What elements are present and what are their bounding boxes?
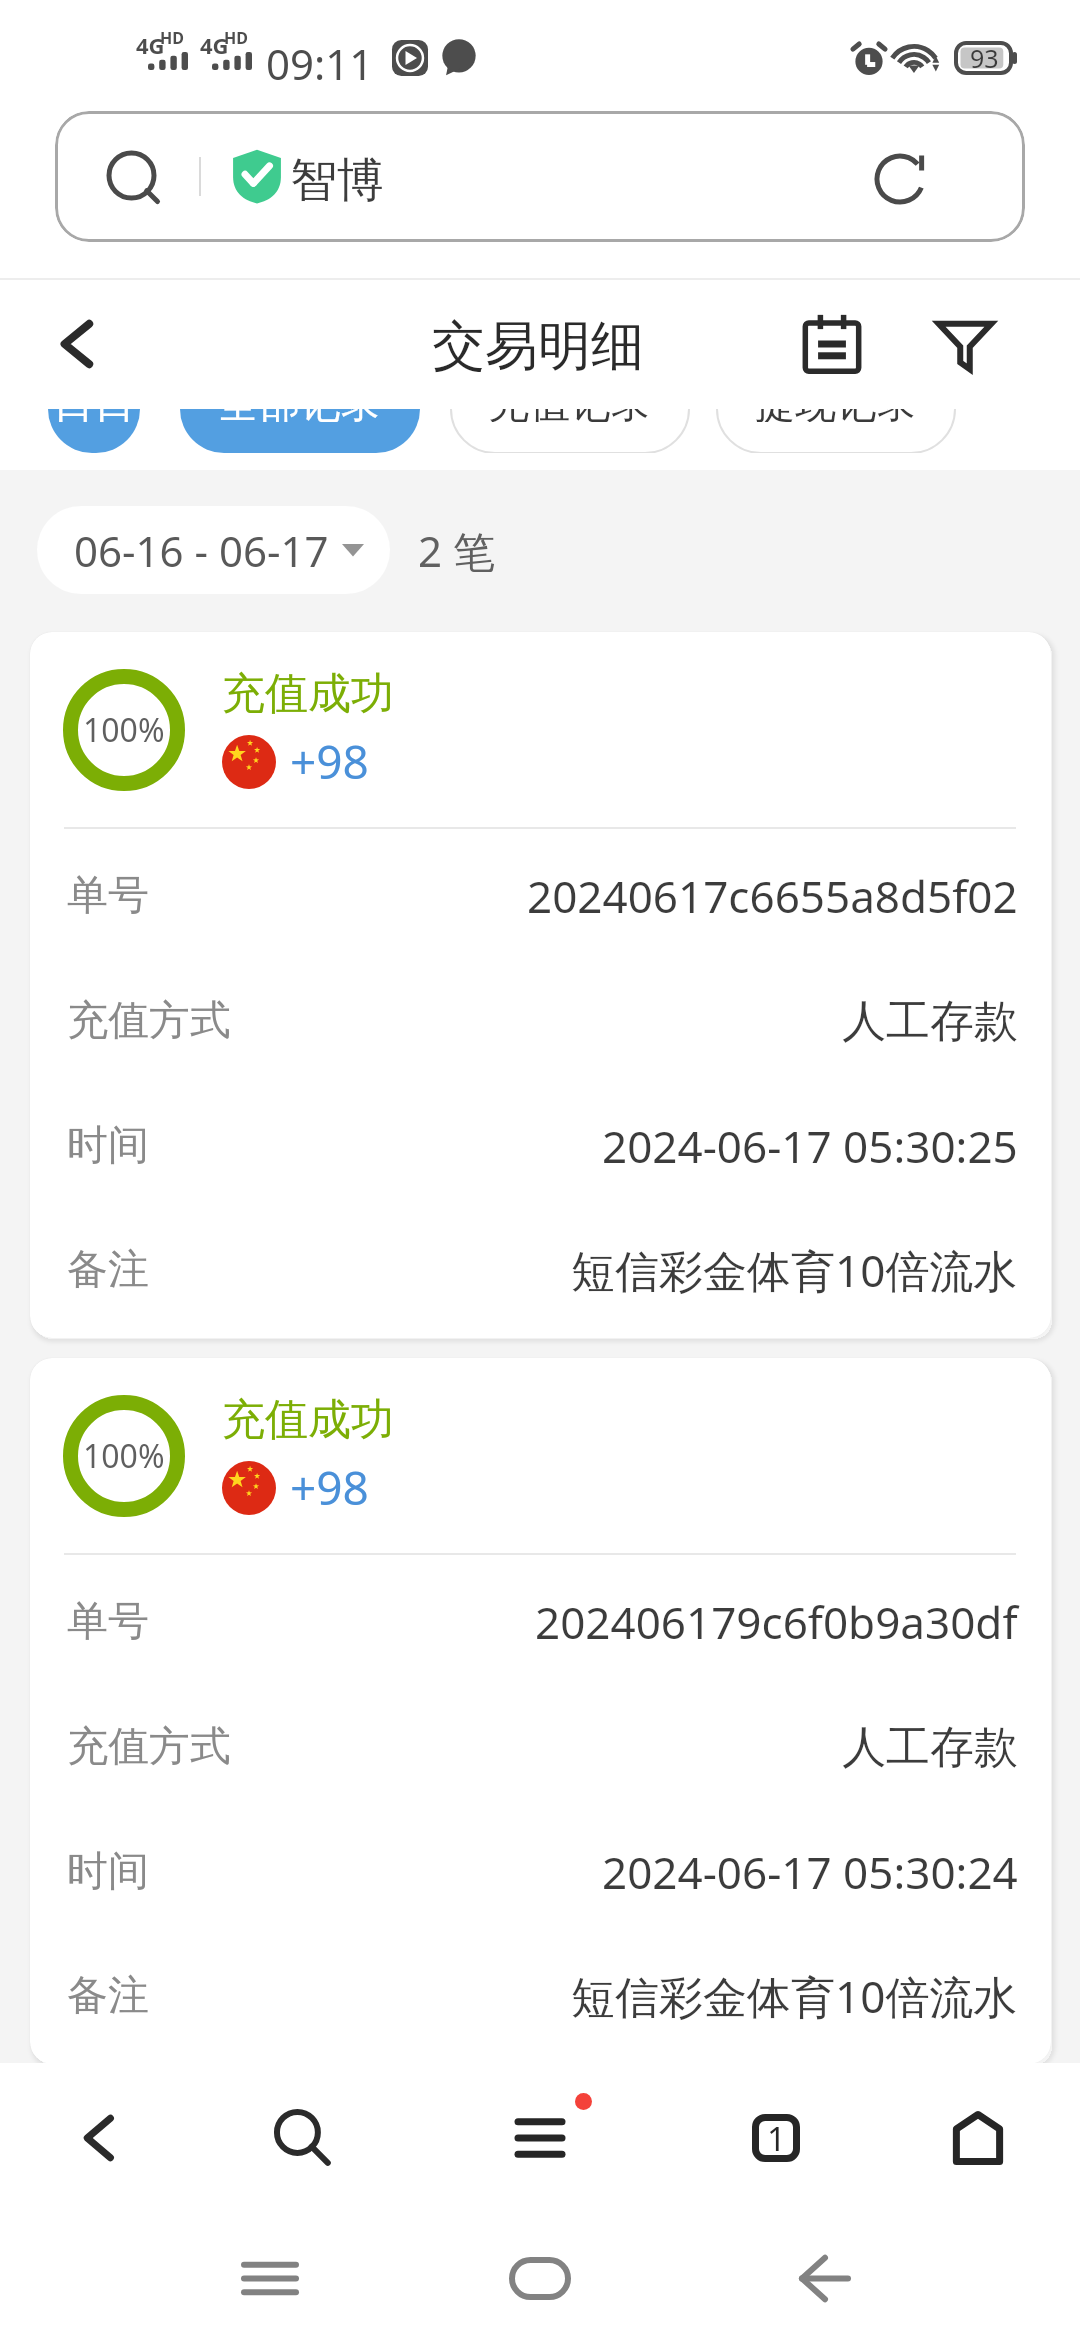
- other: Wifi: [898, 41, 940, 75]
- staticText: 短信彩金体育10倍流水: [571, 1966, 1018, 2026]
- staticText: HD: [160, 27, 184, 49]
- staticText: 时间: [67, 1846, 149, 1898]
- button[interactable]: Recents: [170, 2233, 370, 2323]
- button[interactable]: 100%: [30, 632, 1051, 1338]
- button[interactable]: Search: [55, 111, 1025, 242]
- staticText: 100%: [83, 1434, 165, 1478]
- other: Alarm: [852, 41, 886, 75]
- button[interactable]: 06-16 - 06-17: [37, 506, 390, 594]
- button[interactable]: Tabs: [686, 2063, 866, 2213]
- staticText: 提现记录: [754, 409, 918, 422]
- staticText: 2024-06-17 05:30:25: [602, 1116, 1018, 1176]
- button[interactable]: Filter: [923, 302, 1007, 386]
- button[interactable]: Home: [440, 2233, 640, 2323]
- staticText: 2 笔: [418, 522, 495, 579]
- staticText: 短信彩金体育10倍流水: [571, 1240, 1018, 1300]
- staticText: 人工存款: [842, 994, 1018, 1049]
- staticText: 09:11: [266, 35, 374, 92]
- staticText: 20240617c6655a8d5f02: [527, 866, 1018, 926]
- other: Refresh: [875, 154, 925, 204]
- staticText: 充值方式: [67, 995, 231, 1047]
- staticText: +98: [290, 1456, 369, 1519]
- staticText: 人工存款: [842, 1720, 1018, 1775]
- staticText: 充值记录: [488, 409, 652, 422]
- staticText: 充值成功: [222, 1393, 394, 1447]
- staticText: 智博: [290, 151, 384, 210]
- button[interactable]: 充值记录: [450, 409, 690, 453]
- staticText: 充值方式: [67, 1721, 231, 1773]
- staticText: 单号: [67, 1596, 149, 1648]
- button[interactable]: 100%: [30, 1358, 1051, 2064]
- button[interactable]: Search: [213, 2063, 393, 2213]
- button[interactable]: Back: [725, 2233, 925, 2323]
- button[interactable]: 提现记录: [716, 409, 956, 453]
- staticText: HD: [224, 27, 248, 49]
- staticText: 充值成功: [222, 667, 394, 721]
- staticText: 06-16 - 06-17: [74, 522, 329, 579]
- button[interactable]: Back: [32, 298, 124, 390]
- staticText: 93: [970, 41, 999, 75]
- staticText: 4G: [200, 30, 229, 60]
- button[interactable]: Menu: [450, 2063, 630, 2213]
- button[interactable]: Calendar: [786, 298, 878, 390]
- staticText: 备注: [67, 1970, 149, 2022]
- staticText: +98: [290, 730, 369, 793]
- staticText: 单号: [67, 870, 149, 922]
- staticText: 2024-06-17 05:30:24: [602, 1842, 1018, 1902]
- staticText: 100%: [83, 708, 165, 752]
- other: Search: [108, 152, 158, 202]
- staticText: 交易明细: [432, 313, 644, 380]
- staticText: 日日: [53, 409, 135, 422]
- button[interactable]: 日日: [48, 409, 140, 453]
- button[interactable]: 全部记录: [180, 409, 420, 453]
- staticText: 时间: [67, 1120, 149, 1172]
- staticText: 全部记录: [218, 409, 382, 422]
- staticText: 备注: [67, 1244, 149, 1296]
- button[interactable]: Home: [888, 2063, 1068, 2213]
- staticText: 1: [767, 2116, 786, 2161]
- staticText: 202406179c6f0b9a30df: [535, 1592, 1018, 1652]
- button[interactable]: Back: [10, 2063, 190, 2213]
- staticText: 4G: [136, 30, 165, 60]
